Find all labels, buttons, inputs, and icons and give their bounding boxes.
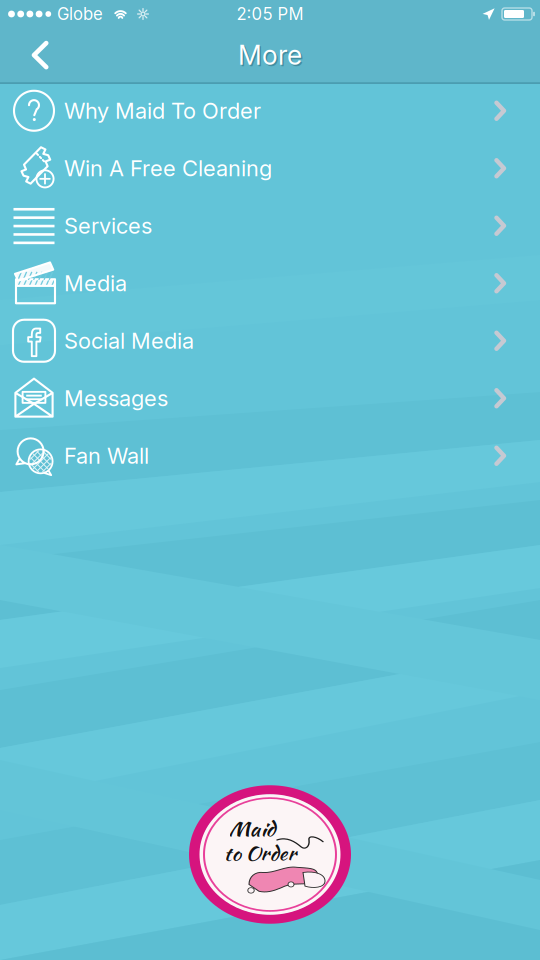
button[interactable]: Back <box>14 29 66 81</box>
staticText: More <box>238 39 302 71</box>
button[interactable]: Why Maid To Order <box>0 82 540 139</box>
staticText: Services <box>64 212 152 239</box>
staticText: More <box>239 40 303 73</box>
button[interactable]: Fan Wall <box>0 427 540 484</box>
staticText: Maid <box>228 808 275 841</box>
staticText: to Order <box>223 838 296 869</box>
staticText: Media <box>64 270 127 296</box>
button[interactable]: Services <box>0 197 540 254</box>
staticText: 2:05 PM <box>236 4 303 24</box>
button[interactable]: Messages <box>0 369 540 427</box>
button[interactable]: Social Media <box>0 312 540 369</box>
button[interactable]: Media <box>0 254 540 312</box>
staticText: Fan Wall <box>64 442 149 469</box>
staticText: Why Maid To Order <box>64 97 261 124</box>
staticText: Messages <box>64 385 168 411</box>
staticText: Globe <box>57 4 103 24</box>
button[interactable]: Win A Free Cleaning <box>0 139 540 197</box>
staticText: Win A Free Cleaning <box>64 155 272 181</box>
staticText: Social Media <box>64 327 194 354</box>
